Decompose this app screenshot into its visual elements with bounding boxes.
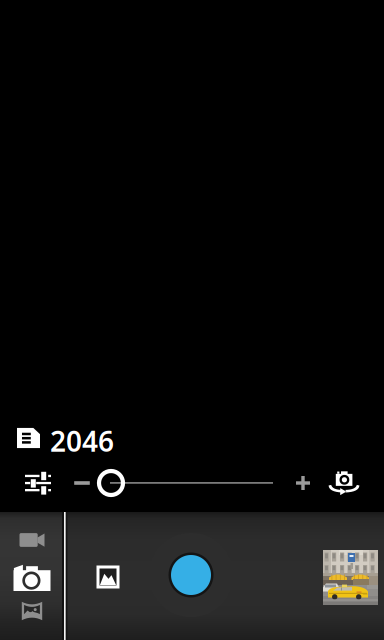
button[interactable]: Effects xyxy=(84,553,132,601)
button[interactable]: Zoom out xyxy=(66,465,98,501)
button[interactable]: Shutter xyxy=(148,532,234,618)
button[interactable]: Switch camera xyxy=(327,468,363,497)
button[interactable]: Photo mode xyxy=(0,560,64,594)
staticText: 2046 xyxy=(50,422,114,460)
button[interactable]: Last photo xyxy=(323,550,378,605)
button[interactable]: Panorama mode xyxy=(0,597,64,625)
button[interactable]: Zoom in xyxy=(287,465,319,501)
button[interactable]: Video mode xyxy=(0,522,64,558)
button[interactable]: Camera settings xyxy=(18,465,58,501)
